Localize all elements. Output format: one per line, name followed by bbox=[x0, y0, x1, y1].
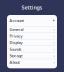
staticText: Account bbox=[9, 18, 23, 23]
staticText: › bbox=[54, 46, 55, 52]
staticText: About bbox=[9, 59, 19, 65]
button[interactable]: Privacy bbox=[7, 33, 57, 39]
staticText: Storage bbox=[9, 53, 22, 58]
button[interactable]: Sounds bbox=[7, 46, 57, 52]
staticText: › bbox=[54, 40, 55, 45]
staticText: › bbox=[54, 59, 55, 65]
button[interactable]: About bbox=[7, 59, 57, 65]
button[interactable]: Display bbox=[7, 39, 57, 46]
button[interactable]: General bbox=[7, 26, 57, 33]
staticText: Settings bbox=[21, 4, 42, 11]
staticText: › bbox=[54, 53, 55, 58]
staticText: › bbox=[54, 27, 55, 32]
button[interactable]: Storage bbox=[7, 53, 57, 59]
staticText: Privacy bbox=[9, 33, 22, 39]
staticText: › bbox=[54, 33, 55, 39]
staticText: Sounds bbox=[9, 46, 21, 52]
staticText: General bbox=[9, 27, 23, 32]
staticText: Display bbox=[9, 40, 22, 45]
button[interactable]: Account bbox=[7, 15, 57, 26]
